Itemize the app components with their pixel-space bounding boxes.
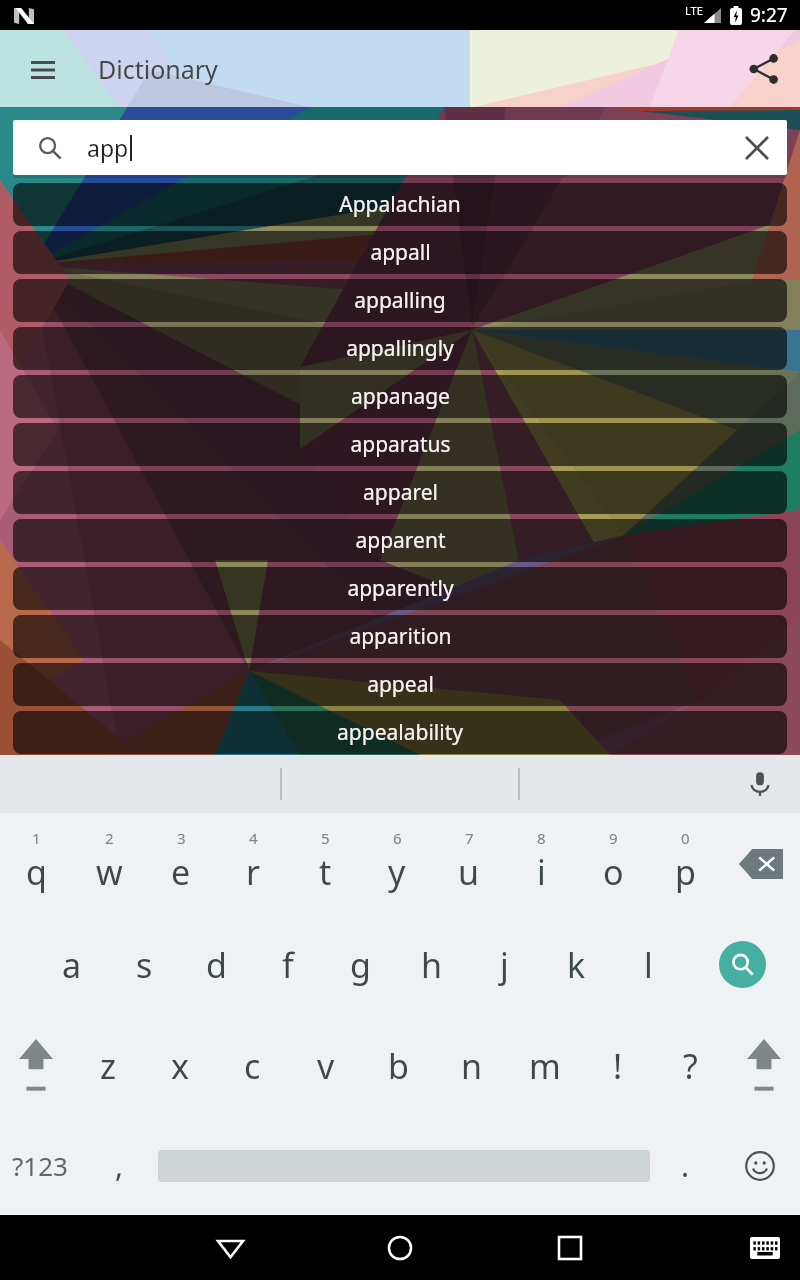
- button[interactable]: Emoji: [720, 1116, 800, 1215]
- button[interactable]: 6: [361, 813, 433, 914]
- staticText: y: [388, 849, 406, 895]
- button[interactable]: 0: [649, 813, 721, 914]
- staticText: appalling: [354, 286, 446, 315]
- button[interactable]: appealability: [13, 711, 787, 754]
- button[interactable]: 5: [289, 813, 361, 914]
- button[interactable]: Change keyboard: [741, 1224, 789, 1272]
- button[interactable]: !: [581, 1015, 654, 1116]
- staticText: !: [613, 1043, 623, 1089]
- button[interactable]: f: [252, 914, 324, 1015]
- button[interactable]: s: [108, 914, 180, 1015]
- staticText: apparatus: [350, 430, 451, 459]
- staticText: s: [136, 942, 153, 988]
- button[interactable]: g: [324, 914, 396, 1015]
- staticText: o: [603, 849, 624, 895]
- button[interactable]: appeal: [13, 663, 787, 706]
- staticText: 2: [105, 828, 114, 848]
- staticText: ,: [115, 1145, 124, 1186]
- staticText: 0: [681, 828, 690, 848]
- button[interactable]: apparatus: [13, 423, 787, 466]
- button[interactable]: 1: [0, 813, 73, 914]
- staticText: 9: [609, 828, 618, 848]
- staticText: appealability: [337, 718, 463, 747]
- staticText: k: [567, 942, 586, 988]
- button[interactable]: n: [435, 1015, 508, 1116]
- button[interactable]: b: [362, 1015, 435, 1116]
- button[interactable]: h: [396, 914, 468, 1015]
- staticText: appall: [370, 238, 431, 267]
- staticText: t: [319, 849, 332, 895]
- button[interactable]: apparel: [13, 471, 787, 514]
- button[interactable]: ?: [654, 1015, 727, 1116]
- button[interactable]: Share: [728, 30, 800, 107]
- staticText: apparel: [363, 478, 438, 507]
- staticText: app: [87, 132, 129, 163]
- button[interactable]: z: [72, 1015, 144, 1116]
- button[interactable]: Recent apps: [540, 1218, 600, 1278]
- button[interactable]: Shift: [727, 1015, 800, 1116]
- staticText: c: [244, 1043, 261, 1089]
- button[interactable]: Backspace: [721, 813, 800, 914]
- button[interactable]: ,: [80, 1116, 158, 1215]
- button[interactable]: j: [468, 914, 540, 1015]
- staticText: appeal: [367, 670, 434, 699]
- button[interactable]: .: [650, 1116, 720, 1215]
- staticText: Dictionary: [98, 52, 218, 86]
- button[interactable]: Clear query: [729, 120, 785, 175]
- button[interactable]: app: [13, 120, 787, 175]
- button[interactable]: appallingly: [13, 327, 787, 370]
- staticText: j: [500, 942, 509, 988]
- staticText: 6: [393, 828, 402, 848]
- button[interactable]: x: [144, 1015, 216, 1116]
- button[interactable]: l: [612, 914, 684, 1015]
- staticText: 5: [321, 828, 330, 848]
- button[interactable]: apparently: [13, 567, 787, 610]
- staticText: p: [675, 849, 696, 895]
- staticText: 4: [249, 828, 258, 848]
- button[interactable]: 8: [505, 813, 577, 914]
- staticText: d: [206, 942, 227, 988]
- button[interactable]: Open navigation drawer: [0, 30, 86, 107]
- button[interactable]: apparition: [13, 615, 787, 658]
- button[interactable]: a: [36, 914, 108, 1015]
- button[interactable]: m: [508, 1015, 581, 1116]
- staticText: f: [282, 942, 294, 988]
- button[interactable]: Search: [719, 941, 766, 988]
- button[interactable]: Home: [370, 1218, 430, 1278]
- button[interactable]: Appalachian: [13, 183, 787, 226]
- button[interactable]: 2: [73, 813, 145, 914]
- staticText: l: [644, 942, 653, 988]
- button[interactable]: c: [216, 1015, 289, 1116]
- staticText: 1: [32, 828, 41, 848]
- staticText: h: [421, 942, 443, 988]
- staticText: LTE: [685, 3, 703, 18]
- button[interactable]: 7: [433, 813, 505, 914]
- staticText: apparent: [355, 526, 446, 555]
- button[interactable]: appanage: [13, 375, 787, 418]
- button[interactable]: 9: [577, 813, 649, 914]
- staticText: .: [681, 1145, 690, 1186]
- button[interactable]: appalling: [13, 279, 787, 322]
- staticText: appallingly: [346, 334, 454, 363]
- button[interactable]: apparent: [13, 519, 787, 562]
- staticText: ?123: [12, 1148, 68, 1183]
- staticText: 9:27: [750, 2, 788, 28]
- button[interactable]: Back: [200, 1218, 260, 1278]
- button[interactable]: v: [289, 1015, 362, 1116]
- button[interactable]: appall: [13, 231, 787, 274]
- button[interactable]: Shift: [0, 1015, 72, 1116]
- button[interactable]: 4: [217, 813, 289, 914]
- staticText: m: [529, 1043, 561, 1089]
- staticText: x: [171, 1043, 189, 1089]
- staticText: n: [461, 1043, 483, 1089]
- staticText: ?: [683, 1043, 698, 1089]
- staticText: e: [171, 849, 191, 895]
- button[interactable]: d: [180, 914, 252, 1015]
- button[interactable]: 3: [145, 813, 217, 914]
- staticText: z: [100, 1043, 116, 1089]
- button[interactable]: k: [540, 914, 612, 1015]
- button[interactable]: Voice input: [736, 760, 784, 808]
- staticText: 8: [537, 828, 546, 848]
- button[interactable]: ?123: [0, 1116, 80, 1215]
